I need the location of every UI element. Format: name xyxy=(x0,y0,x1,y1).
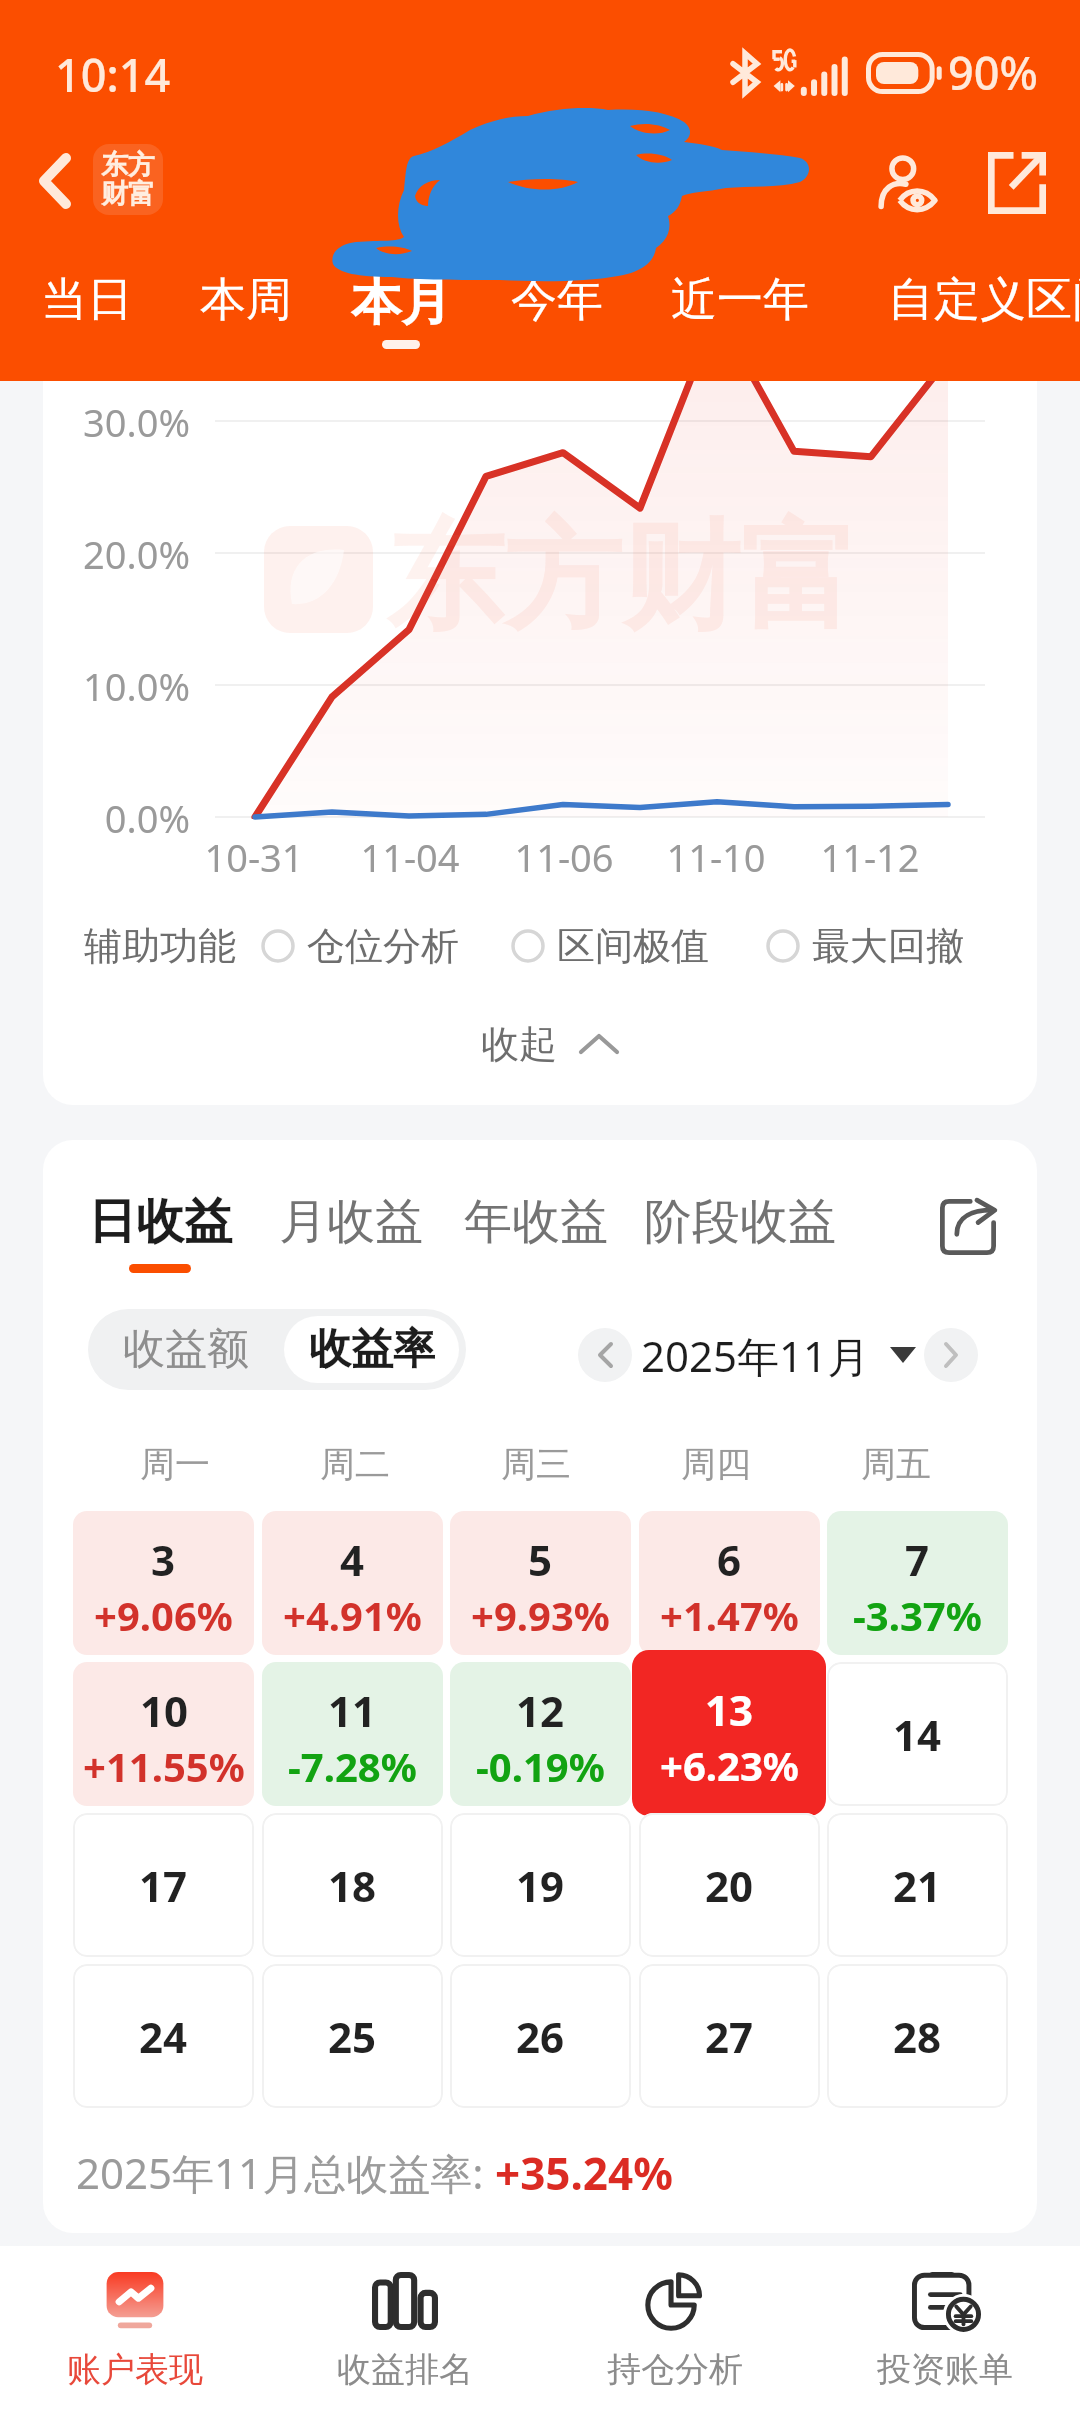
button[interactable]: 2025年11月 xyxy=(641,1322,916,1388)
staticText: 11 xyxy=(328,1682,377,1739)
staticText: +11.55% xyxy=(83,1739,245,1793)
staticText: 周四 xyxy=(626,1442,806,1486)
staticText: 收益率 xyxy=(309,1323,435,1376)
staticText: 投资账单 xyxy=(877,2348,1013,2391)
staticText: 3 xyxy=(151,1531,176,1588)
button[interactable]: 持仓分析 xyxy=(540,2246,810,2412)
button[interactable]: 本月 xyxy=(346,271,456,363)
staticText: 近一年 xyxy=(671,271,809,329)
button[interactable]: 年收益 xyxy=(451,1192,621,1302)
button[interactable]: 收益额 xyxy=(88,1309,284,1390)
button[interactable]: 投资账单 xyxy=(810,2246,1080,2412)
button[interactable]: 17 xyxy=(73,1813,254,1957)
staticText: 2025年11月 xyxy=(641,1327,870,1384)
staticText: 10.0% xyxy=(43,660,190,712)
button[interactable]: 14 xyxy=(827,1662,1008,1806)
staticText: 周三 xyxy=(446,1442,626,1486)
button[interactable]: 账户表现 xyxy=(0,2246,270,2412)
button[interactable]: 13 xyxy=(632,1650,826,1816)
button[interactable]: Back xyxy=(14,140,95,221)
staticText: 11-10 xyxy=(626,831,806,883)
staticText: 24 xyxy=(139,2008,188,2065)
button[interactable]: 24 xyxy=(73,1964,254,2108)
button[interactable]: 21 xyxy=(827,1813,1008,1957)
button[interactable]: 20 xyxy=(639,1813,820,1957)
button[interactable]: 区间极值 xyxy=(511,919,709,973)
staticText: 19 xyxy=(516,1857,565,1914)
button[interactable]: Share xyxy=(972,138,1062,228)
staticText: +35.24% xyxy=(495,2143,673,2201)
button[interactable]: 东方 财富 xyxy=(93,144,163,215)
button[interactable]: 最大回撤 xyxy=(766,919,964,973)
staticText: 5 xyxy=(528,1531,553,1588)
staticText: 东方财富 xyxy=(386,503,858,652)
staticText: 12 xyxy=(516,1682,565,1739)
staticText: 18 xyxy=(328,1857,377,1914)
button[interactable]: 6 xyxy=(639,1511,820,1655)
staticText: 10:14 xyxy=(55,44,171,105)
staticText: 6 xyxy=(717,1531,742,1588)
button[interactable]: 当日 xyxy=(32,271,142,363)
staticText: 0.0% xyxy=(43,792,190,844)
button[interactable]: 3 xyxy=(73,1511,254,1655)
button[interactable]: 今年 xyxy=(502,271,612,363)
staticText: 14 xyxy=(893,1706,942,1763)
button[interactable]: 收益率 xyxy=(284,1316,459,1383)
button[interactable]: Previous month xyxy=(578,1328,632,1382)
button[interactable]: 11 xyxy=(262,1662,443,1806)
staticText: 13 xyxy=(705,1681,754,1738)
button[interactable]: Share xyxy=(929,1188,1007,1266)
staticText: 20 xyxy=(705,1857,754,1914)
button[interactable]: 7 xyxy=(827,1511,1008,1655)
button[interactable]: 12 xyxy=(450,1662,631,1806)
button[interactable]: 仓位分析 xyxy=(261,919,459,973)
staticText: 收起 xyxy=(481,1020,557,1068)
staticText: 21 xyxy=(893,1857,942,1914)
staticText: 自定义区间 xyxy=(888,271,1080,329)
staticText: 7 xyxy=(905,1531,930,1588)
staticText: +1.47% xyxy=(660,1588,799,1642)
button[interactable]: 18 xyxy=(262,1813,443,1957)
button[interactable]: 日收益 xyxy=(75,1192,245,1302)
staticText: 区间极值 xyxy=(557,922,709,970)
staticText: 月收益 xyxy=(279,1192,423,1252)
button[interactable]: 26 xyxy=(450,1964,631,2108)
staticText: 辅助功能 xyxy=(84,922,236,970)
staticText: 20.0% xyxy=(43,528,190,580)
staticText: 11-12 xyxy=(780,831,960,883)
button[interactable]: 27 xyxy=(639,1964,820,2108)
button[interactable]: 10 xyxy=(73,1662,254,1806)
button[interactable]: 自定义区间 xyxy=(873,271,1080,363)
button[interactable]: 28 xyxy=(827,1964,1008,2108)
button[interactable]: 19 xyxy=(450,1813,631,1957)
staticText: 10-31 xyxy=(164,831,344,883)
button[interactable]: 4 xyxy=(262,1511,443,1655)
button[interactable]: 收益排名 xyxy=(270,2246,540,2412)
staticText: 27 xyxy=(705,2008,754,2065)
staticText: +6.23% xyxy=(660,1738,799,1792)
button[interactable]: 阶段收益 xyxy=(630,1192,850,1302)
staticText: 2025年11月总收益率: xyxy=(76,2144,495,2201)
button[interactable]: 近一年 xyxy=(660,271,820,363)
staticText: 28 xyxy=(893,2008,942,2065)
staticText: 17 xyxy=(139,1857,188,1914)
staticText: 收益排名 xyxy=(337,2348,473,2391)
button[interactable]: 5 xyxy=(450,1511,631,1655)
staticText: 11-04 xyxy=(320,831,500,883)
button[interactable]: 月收益 xyxy=(266,1192,436,1302)
staticText: 仓位分析 xyxy=(307,922,459,970)
staticText: 周一 xyxy=(85,1442,265,1486)
staticText: -3.37% xyxy=(853,1588,982,1642)
staticText: 收益额 xyxy=(123,1323,249,1376)
button[interactable]: Followers xyxy=(864,138,954,228)
button[interactable]: 收起 xyxy=(467,1015,633,1073)
button[interactable]: 25 xyxy=(262,1964,443,2108)
button[interactable]: Next month xyxy=(924,1328,978,1382)
staticText: -0.19% xyxy=(476,1739,605,1793)
staticText: 周二 xyxy=(265,1442,445,1486)
staticText: 账户表现 xyxy=(67,2348,203,2391)
staticText: 年收益 xyxy=(464,1192,608,1252)
staticText: 本周 xyxy=(200,271,292,329)
staticText: 阶段收益 xyxy=(644,1192,836,1252)
button[interactable]: 本周 xyxy=(191,271,301,363)
